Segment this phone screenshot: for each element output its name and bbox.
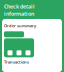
- staticText: about your order: [4, 17, 44, 24]
- staticText: Transactions: [4, 59, 29, 65]
- staticText: Check detail information: [4, 3, 35, 17]
- staticText: Order summary: [4, 23, 36, 28]
